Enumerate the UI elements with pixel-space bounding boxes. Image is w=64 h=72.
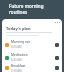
button[interactable]: More (55, 20, 60, 25)
staticText: routines (9, 9, 28, 15)
staticText: 7:30 AM (11, 69, 22, 72)
button[interactable]: Meditation (4, 51, 60, 64)
button[interactable]: Toggle (55, 56, 59, 60)
button[interactable]: Toggle (55, 43, 59, 47)
staticText: Morning run (11, 40, 31, 44)
button[interactable]: Toggle (55, 66, 59, 70)
staticText: Breakfast (11, 64, 26, 68)
button[interactable]: Breakfast (4, 64, 60, 72)
staticText: Meditation (11, 53, 28, 57)
staticText: Future morning (9, 3, 44, 9)
staticText: Today's plan (6, 26, 31, 31)
staticText: 6:45 AM (11, 58, 22, 62)
staticText: 6:00 AM (11, 45, 22, 49)
button[interactable]: Morning run (4, 38, 60, 51)
